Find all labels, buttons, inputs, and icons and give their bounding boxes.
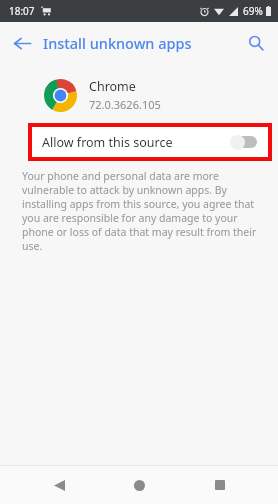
staticText: Chrome: [89, 78, 136, 95]
button[interactable]: Recent apps: [198, 466, 242, 504]
button[interactable]: Allow from this source: [28, 123, 272, 161]
button[interactable]: Back: [37, 466, 81, 504]
staticText: 18:07: [9, 4, 35, 18]
staticText: 69%: [243, 4, 263, 18]
button[interactable]: Home: [117, 466, 161, 504]
button[interactable]: Search: [240, 27, 272, 59]
staticText: Allow from this source: [42, 134, 173, 151]
staticText: Install unknown apps: [43, 33, 192, 53]
staticText: Your phone and personal data are more vu…: [22, 169, 262, 253]
button[interactable]: Chrome: [0, 74, 278, 116]
staticText: 72.0.3626.105: [89, 97, 161, 112]
button[interactable]: Back: [6, 27, 38, 59]
